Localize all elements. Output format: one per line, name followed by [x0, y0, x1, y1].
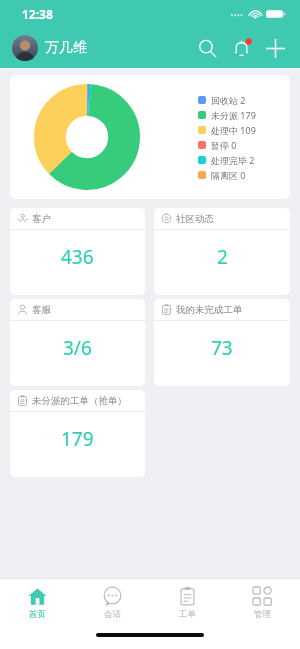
button[interactable]: 会话: [75, 579, 150, 627]
staticText: 会话: [104, 609, 121, 620]
button[interactable]: 首页: [0, 579, 75, 627]
button[interactable]: Search: [190, 31, 224, 65]
staticText: 处理完毕 2: [211, 154, 255, 166]
button[interactable]: 我的未完成工单: [154, 299, 290, 386]
staticText: 179: [61, 426, 94, 452]
staticText: 客服: [32, 304, 51, 316]
staticText: 回收站 2: [211, 94, 246, 106]
staticText: 73: [211, 335, 233, 361]
button[interactable]: 管理: [225, 579, 300, 627]
staticText: 我的未完成工单: [176, 304, 243, 316]
staticText: 436: [61, 244, 94, 270]
staticText: 隔离区 0: [211, 169, 246, 181]
staticText: 2: [217, 244, 228, 270]
button[interactable]: 未分派的工单（抢单）: [10, 390, 145, 477]
staticText: 万几维: [45, 39, 87, 57]
staticText: 暂停 0: [211, 139, 237, 151]
button[interactable]: 工单: [150, 579, 225, 627]
button[interactable]: 客户: [10, 208, 145, 295]
staticText: 3/6: [63, 335, 92, 361]
staticText: 未分派 179: [211, 109, 256, 121]
button[interactable]: 社区动态: [154, 208, 290, 295]
staticText: 客户: [32, 213, 51, 225]
staticText: 处理中 109: [211, 124, 256, 136]
staticText: 管理: [254, 609, 271, 620]
staticText: 工单: [179, 609, 196, 620]
button[interactable]: 万几维: [12, 33, 87, 63]
button[interactable]: 客服: [10, 299, 145, 386]
staticText: 未分派的工单（抢单）: [32, 395, 127, 407]
staticText: 12:38: [22, 6, 53, 22]
staticText: 首页: [29, 609, 46, 620]
button[interactable]: 回收站 2: [10, 75, 290, 199]
button[interactable]: Notifications: [224, 31, 258, 65]
button[interactable]: Add: [258, 31, 292, 65]
staticText: 社区动态: [176, 213, 214, 225]
